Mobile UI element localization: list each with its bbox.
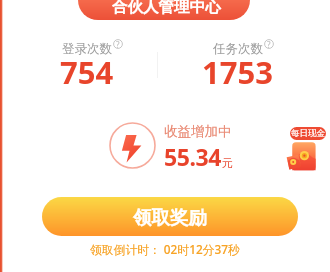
staticText: 754 [60, 51, 114, 93]
button[interactable]: 登录次数 [27, 41, 147, 99]
button[interactable]: 每日现金 [290, 127, 326, 140]
staticText: 每日现金 [291, 128, 325, 139]
staticText: 1753 [202, 51, 273, 93]
staticText: 任务次数 [213, 41, 263, 57]
button[interactable]: 领取奖励 [42, 197, 298, 236]
staticText: 收益增加中 [164, 123, 232, 140]
staticText: 登录次数 [62, 41, 112, 57]
staticText: 元 [222, 156, 233, 170]
staticText: 领取倒计时： 02时12分37秒 [90, 241, 240, 257]
button[interactable]: 任务次数 [177, 41, 297, 99]
staticText: ? [267, 39, 271, 49]
staticText: 领取奖励 [133, 206, 207, 229]
button[interactable]: 合伙人管理中心 [78, 0, 250, 20]
staticText: 合伙人管理中心 [112, 0, 221, 17]
staticText: 55.34 [164, 141, 222, 172]
other: Daily cash red packet [286, 142, 318, 172]
staticText: ? [116, 39, 120, 49]
